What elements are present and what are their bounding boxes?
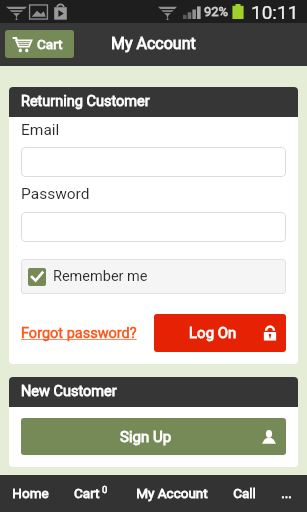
staticText: 0 — [102, 484, 108, 495]
staticText: My Account — [111, 34, 196, 53]
staticText: Cart — [37, 36, 63, 52]
button[interactable]: Remember me — [21, 259, 286, 294]
staticText: Cart — [74, 485, 100, 501]
staticText: My Account — [136, 485, 208, 501]
button[interactable]: Home — [0, 475, 60, 512]
button[interactable]: ... — [266, 475, 307, 512]
staticText: Call — [233, 485, 256, 501]
staticText: New Customer — [21, 383, 117, 400]
staticText: Log On — [189, 324, 237, 342]
button[interactable]: Sign Up — [21, 418, 286, 455]
button[interactable]: My Account — [122, 475, 222, 512]
staticText: 92% — [204, 4, 229, 19]
staticText: Forgot password? — [21, 325, 137, 342]
staticText: ... — [281, 485, 292, 501]
button[interactable]: Text field — [21, 212, 286, 242]
button[interactable]: Call — [222, 475, 266, 512]
button[interactable]: Forgot password? — [21, 321, 137, 346]
button[interactable]: Text field — [21, 147, 286, 177]
button[interactable]: Log On — [154, 314, 286, 352]
staticText: 10:11 — [251, 1, 299, 23]
button[interactable]: Cart — [60, 475, 122, 512]
staticText: Remember me — [53, 268, 148, 285]
staticText: Password — [21, 185, 90, 203]
staticText: Email — [21, 121, 60, 139]
button[interactable]: Cart — [5, 30, 74, 58]
staticText: Sign Up — [120, 428, 172, 446]
staticText: Returning Customer — [21, 93, 150, 110]
staticText: Home — [12, 485, 49, 501]
